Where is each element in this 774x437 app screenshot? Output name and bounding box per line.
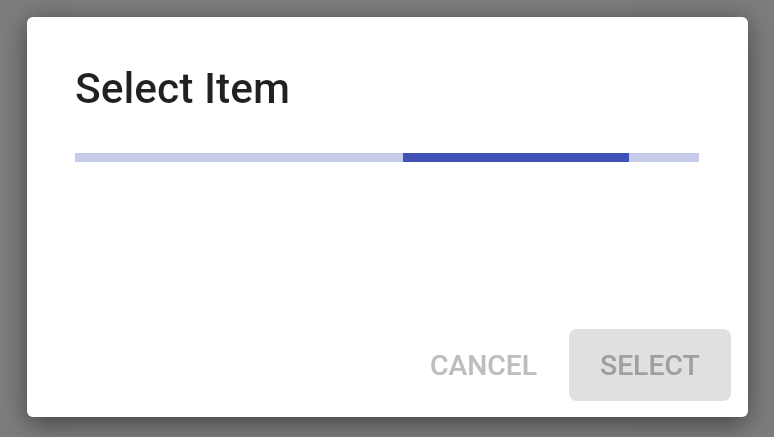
- button[interactable]: SELECT: [569, 329, 731, 401]
- button[interactable]: CANCEL: [418, 329, 550, 401]
- staticText: Select Item: [75, 64, 290, 114]
- other: Select Item dialog: [27, 17, 748, 417]
- staticText: SELECT: [600, 349, 700, 382]
- other: Loading: [75, 153, 699, 162]
- staticText: CANCEL: [430, 349, 538, 382]
